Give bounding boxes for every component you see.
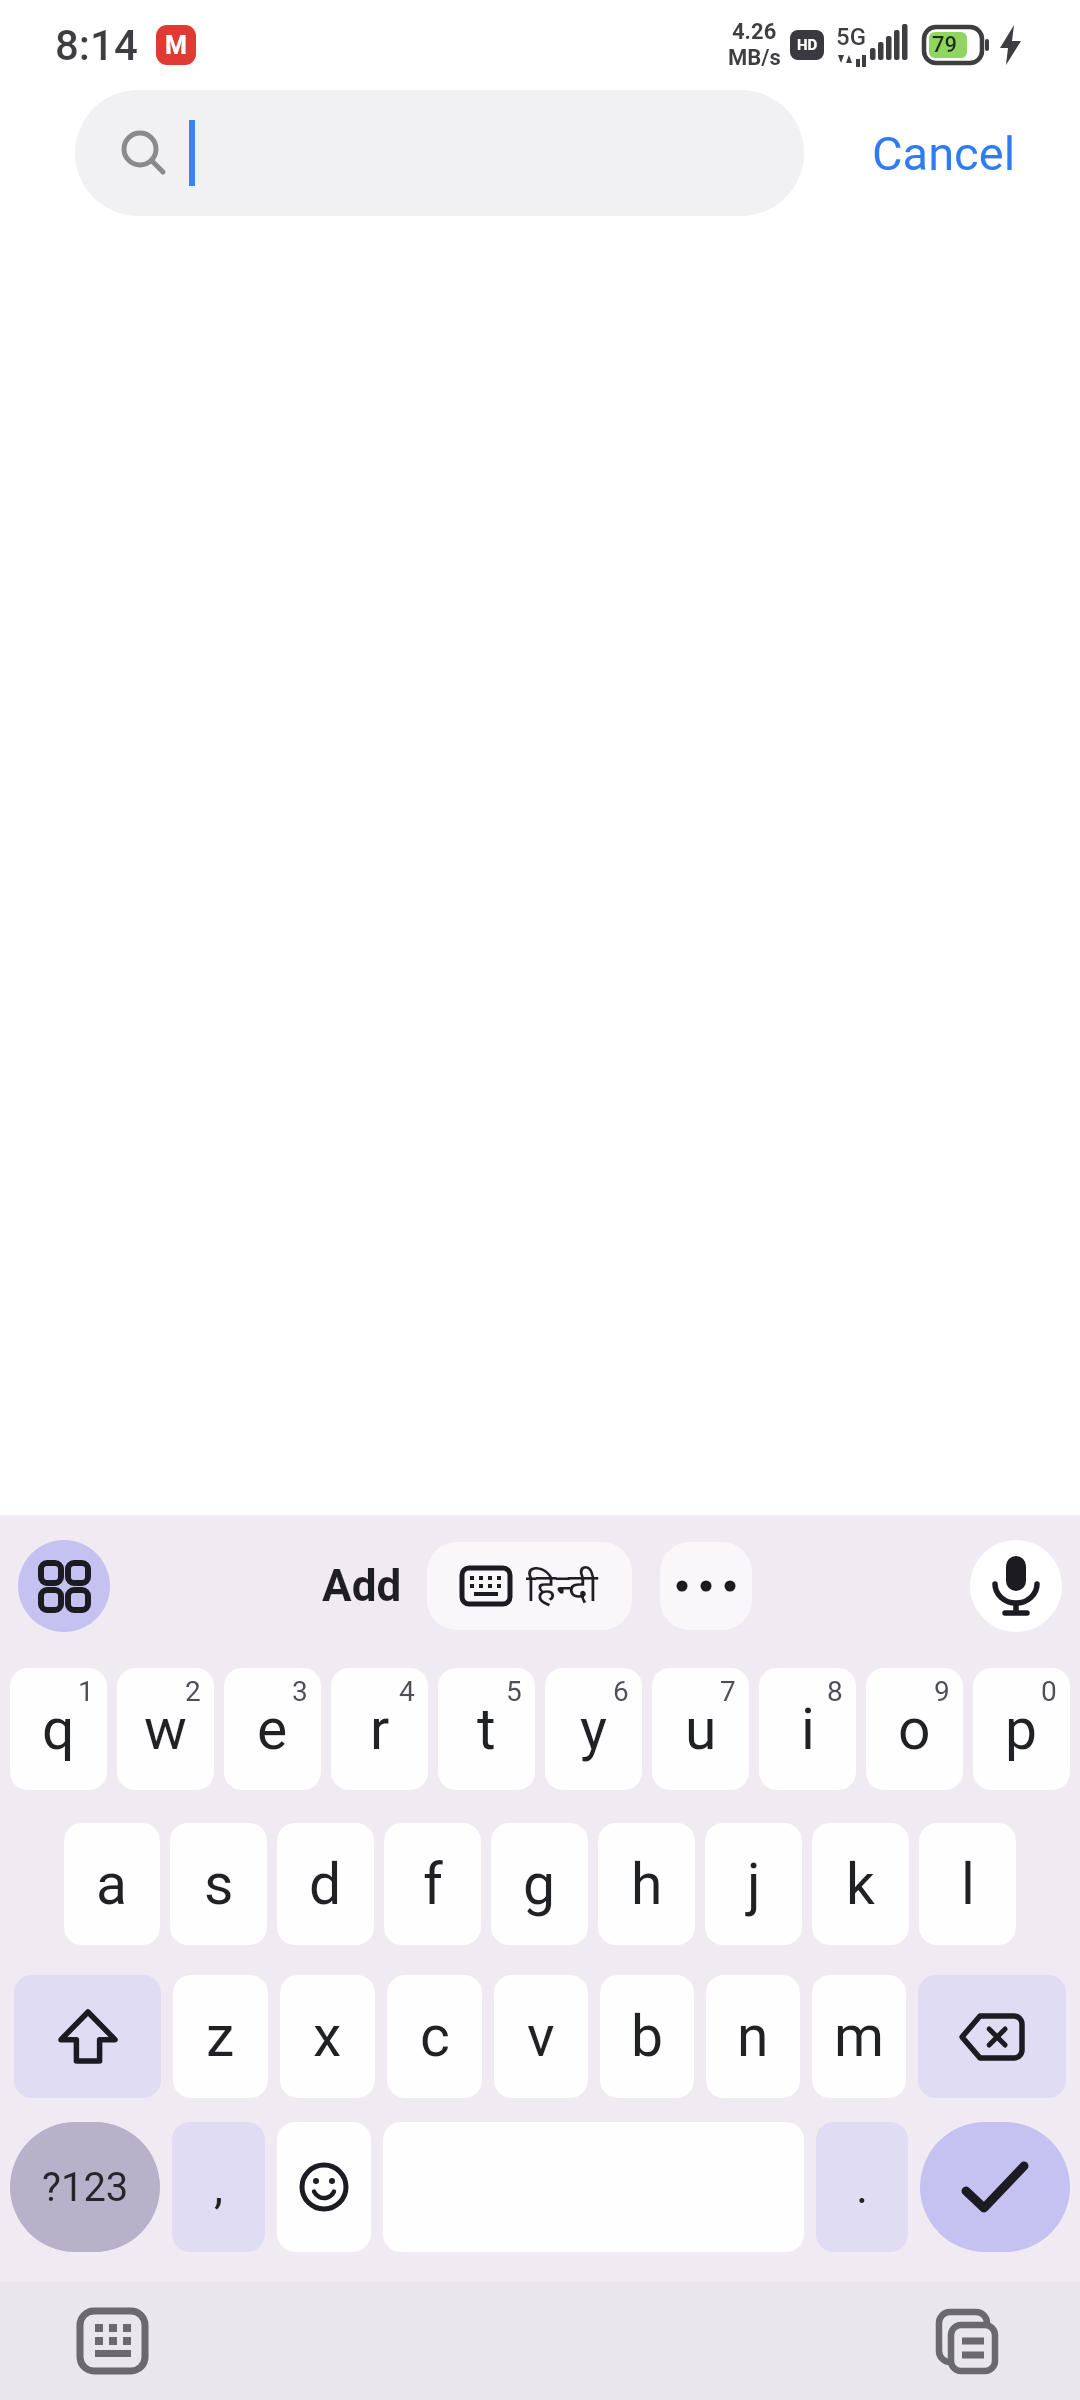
- button[interactable]: f: [384, 1823, 481, 1945]
- staticText: HD: [797, 36, 818, 54]
- button[interactable]: [75, 90, 804, 216]
- staticText: ?123: [42, 2164, 129, 2211]
- staticText: 2: [185, 1675, 201, 1708]
- button[interactable]: i: [759, 1668, 856, 1790]
- staticText: 4.26: [732, 19, 777, 45]
- staticText: f: [423, 1851, 443, 1918]
- staticText: .: [856, 2160, 869, 2214]
- staticText: d: [309, 1851, 342, 1918]
- staticText: i: [801, 1696, 815, 1763]
- staticText: p: [1005, 1696, 1038, 1763]
- staticText: v: [527, 2003, 555, 2070]
- button[interactable]: q: [10, 1668, 107, 1790]
- staticText: Add: [322, 1560, 402, 1612]
- staticText: हिन्दी: [526, 1560, 598, 1612]
- button[interactable]: [18, 1540, 110, 1632]
- button[interactable]: [936, 2309, 998, 2373]
- staticText: z: [206, 2003, 235, 2070]
- button[interactable]: y: [545, 1668, 642, 1790]
- button[interactable]: Add: [322, 1540, 402, 1632]
- staticText: 79: [932, 32, 958, 58]
- button[interactable]: l: [919, 1823, 1016, 1945]
- button[interactable]: k: [812, 1823, 909, 1945]
- staticText: 4: [399, 1675, 415, 1708]
- button[interactable]: [920, 2122, 1070, 2252]
- button[interactable]: ,: [172, 2122, 265, 2252]
- staticText: r: [370, 1696, 390, 1763]
- staticText: 5G: [836, 23, 866, 51]
- staticText: a: [96, 1851, 128, 1918]
- staticText: l: [961, 1851, 975, 1918]
- staticText: 6: [613, 1675, 629, 1708]
- staticText: m: [834, 2003, 884, 2070]
- staticText: 8: [827, 1675, 843, 1708]
- button[interactable]: o: [866, 1668, 963, 1790]
- button[interactable]: .: [816, 2122, 908, 2252]
- staticText: u: [685, 1696, 717, 1763]
- button[interactable]: r: [331, 1668, 428, 1790]
- staticText: t: [477, 1696, 496, 1763]
- staticText: n: [737, 2003, 769, 2070]
- staticText: y: [580, 1696, 607, 1763]
- button[interactable]: n: [706, 1975, 800, 2098]
- button[interactable]: d: [277, 1823, 374, 1945]
- staticText: g: [523, 1851, 556, 1918]
- button[interactable]: t: [438, 1668, 535, 1790]
- staticText: 0: [1041, 1675, 1057, 1708]
- staticText: 3: [292, 1675, 308, 1708]
- button[interactable]: v: [494, 1975, 588, 2098]
- button[interactable]: w: [117, 1668, 214, 1790]
- button[interactable]: j: [705, 1823, 802, 1945]
- staticText: MB/s: [728, 45, 781, 71]
- staticText: e: [257, 1696, 288, 1763]
- button[interactable]: [14, 1975, 161, 2098]
- button[interactable]: p: [973, 1668, 1070, 1790]
- button[interactable]: m: [812, 1975, 906, 2098]
- staticText: 7: [720, 1675, 736, 1708]
- button[interactable]: e: [224, 1668, 321, 1790]
- button[interactable]: ?123: [10, 2122, 160, 2252]
- button[interactable]: s: [170, 1823, 267, 1945]
- button[interactable]: z: [173, 1975, 268, 2098]
- button[interactable]: [660, 1542, 752, 1630]
- staticText: o: [898, 1696, 931, 1763]
- staticText: w: [144, 1696, 187, 1763]
- staticText: 8:14: [55, 21, 138, 70]
- staticText: q: [42, 1696, 75, 1763]
- staticText: 5: [506, 1675, 522, 1708]
- button[interactable]: u: [652, 1668, 749, 1790]
- button[interactable]: [970, 1540, 1062, 1632]
- button[interactable]: [277, 2122, 371, 2252]
- button[interactable]: g: [491, 1823, 588, 1945]
- staticText: c: [420, 2003, 450, 2070]
- button[interactable]: x: [280, 1975, 375, 2098]
- button[interactable]: [918, 1975, 1066, 2098]
- button[interactable]: c: [387, 1975, 482, 2098]
- staticText: ,: [214, 2160, 224, 2214]
- staticText: x: [313, 2003, 342, 2070]
- staticText: 1: [78, 1675, 94, 1708]
- staticText: 9: [934, 1675, 950, 1708]
- staticText: j: [747, 1851, 761, 1918]
- staticText: s: [204, 1851, 234, 1918]
- button[interactable]: हिन्दी: [427, 1542, 632, 1630]
- button[interactable]: b: [600, 1975, 694, 2098]
- staticText: b: [631, 2003, 664, 2070]
- staticText: M: [165, 31, 187, 60]
- button[interactable]: Cancel: [872, 126, 1016, 181]
- button[interactable]: h: [598, 1823, 695, 1945]
- staticText: h: [631, 1851, 663, 1918]
- staticText: k: [846, 1851, 875, 1918]
- staticText: Cancel: [872, 126, 1016, 181]
- button[interactable]: a: [64, 1823, 160, 1945]
- button[interactable]: [80, 2311, 145, 2371]
